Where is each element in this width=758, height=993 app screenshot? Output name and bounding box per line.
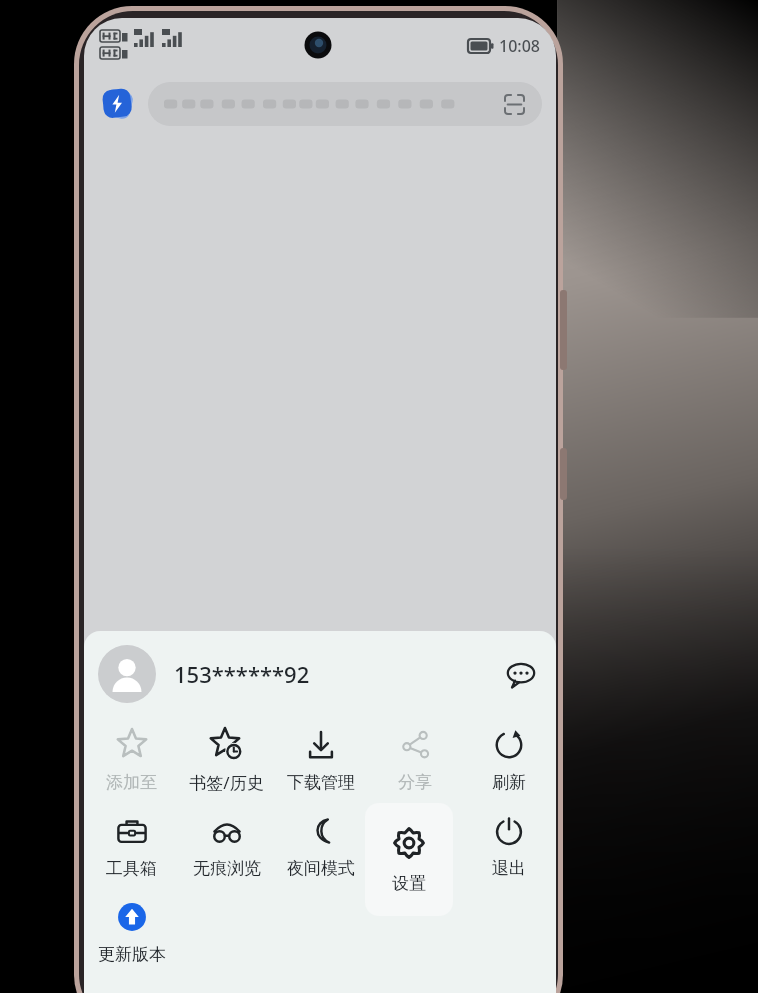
button[interactable]: Feedback — [500, 653, 542, 695]
staticText: 更新版本 — [98, 944, 166, 965]
button[interactable]: Quick app — [98, 84, 138, 124]
button[interactable]: 更新版本 — [84, 889, 179, 975]
button[interactable]: 工具箱 — [84, 803, 179, 889]
button[interactable]: 153******92 — [98, 645, 500, 703]
staticText: 设置 — [392, 873, 426, 894]
button[interactable]: 刷新 — [462, 717, 556, 803]
staticText: 设置 — [398, 858, 432, 879]
button[interactable]: 下载管理 — [274, 717, 368, 803]
button[interactable]: 退出 — [462, 803, 556, 889]
staticText: 刷新 — [492, 772, 526, 793]
staticText: 夜间模式 — [287, 858, 355, 879]
staticText: 分享 — [398, 772, 432, 793]
staticText: 下载管理 — [287, 772, 355, 793]
staticText: 书签/历史 — [189, 771, 264, 794]
staticText: 工具箱 — [106, 858, 157, 879]
staticText: 153******92 — [174, 659, 310, 689]
button[interactable]: Scan — [148, 82, 542, 126]
staticText: 无痕浏览 — [193, 858, 261, 879]
button[interactable]: 书签/历史 — [179, 717, 274, 803]
button[interactable]: 添加至 — [84, 717, 179, 803]
button[interactable]: 设置 — [368, 803, 462, 889]
staticText: 退出 — [492, 858, 526, 879]
button[interactable]: Scan — [502, 92, 526, 116]
button[interactable]: 无痕浏览 — [179, 803, 274, 889]
button[interactable]: 设置 — [365, 803, 453, 916]
staticText: 10:08 — [499, 35, 540, 57]
button[interactable]: 夜间模式 — [274, 803, 368, 889]
staticText: 添加至 — [106, 772, 157, 793]
button[interactable]: 分享 — [368, 717, 462, 803]
